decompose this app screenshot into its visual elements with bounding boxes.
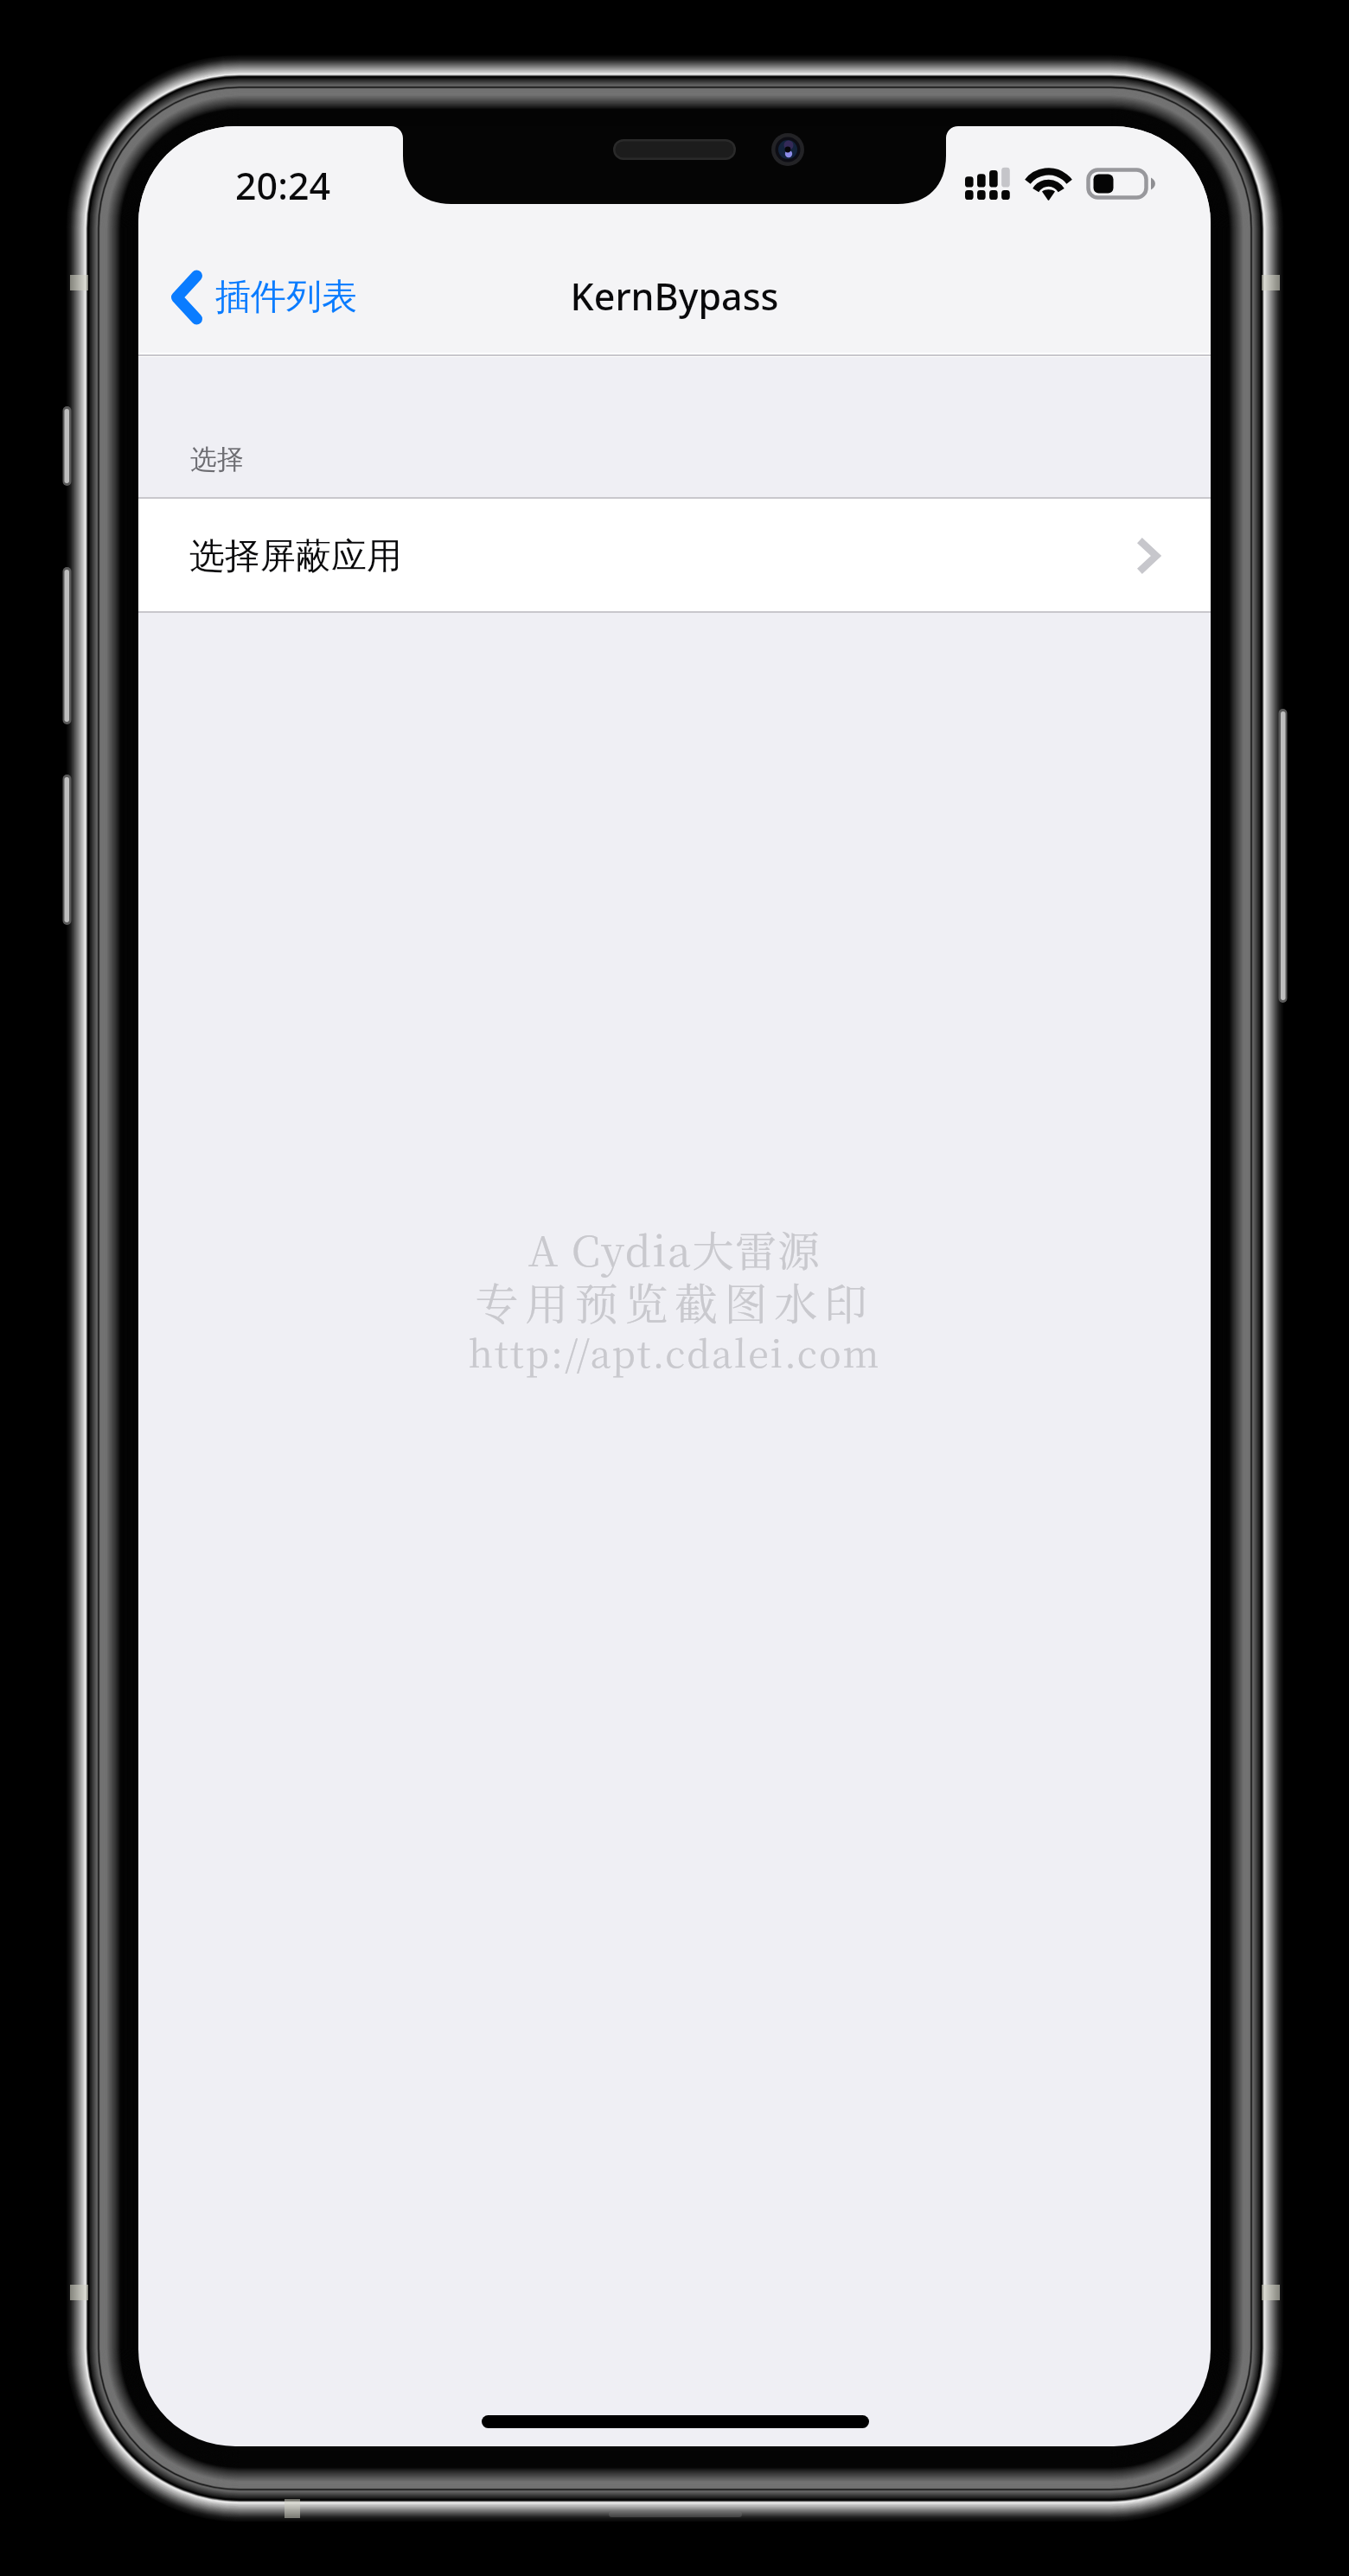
staticText: 插件列表	[215, 275, 357, 320]
button[interactable]: 选择屏蔽应用	[138, 497, 1211, 613]
button[interactable]: 插件列表	[166, 254, 369, 341]
staticText: http://apt.cdalei.com	[138, 1325, 1211, 1379]
staticText: 选择屏蔽应用	[189, 534, 402, 579]
staticText: 20:24	[235, 160, 331, 211]
other: Open	[1135, 536, 1163, 576]
staticText: 专用预览截图水印	[138, 1270, 1211, 1332]
staticText: KernBypass	[138, 271, 1211, 322]
staticText: A Cydia大雷源	[138, 1219, 1211, 1278]
staticText: 选择	[190, 443, 244, 476]
